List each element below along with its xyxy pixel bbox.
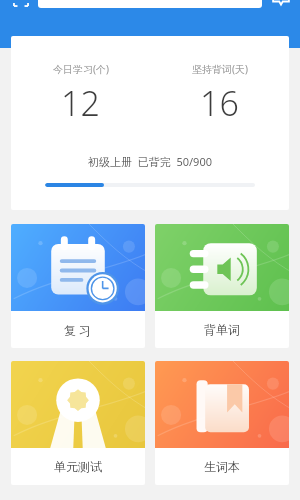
staticText: 初级上册 已背完 50/900 <box>11 154 289 169</box>
button[interactable]: 生词本 <box>155 361 289 485</box>
staticText: 12 <box>61 80 100 126</box>
button[interactable] <box>38 0 262 8</box>
staticText: 今日学习(个) <box>53 62 109 76</box>
button[interactable]: 复 习 <box>11 224 145 348</box>
staticText: 16 <box>200 80 239 126</box>
staticText: 复 习 <box>64 322 92 338</box>
button[interactable]: Messages <box>270 0 292 9</box>
button[interactable]: Scan <box>10 0 32 10</box>
staticText: 生词本 <box>204 459 240 474</box>
button[interactable]: 背单词 <box>155 224 289 348</box>
staticText: 背单词 <box>204 322 240 337</box>
staticText: 坚持背词(天) <box>192 62 248 76</box>
staticText: 单元测试 <box>54 459 102 474</box>
button[interactable]: 单元测试 <box>11 361 145 485</box>
